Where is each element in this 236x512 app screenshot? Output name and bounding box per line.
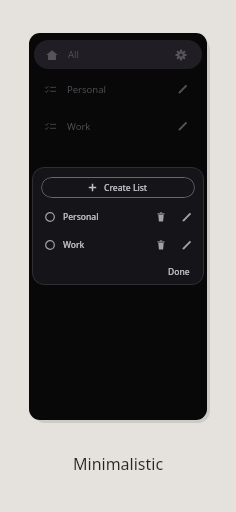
staticText: Personal <box>67 83 106 96</box>
button[interactable]: Edit Personal <box>175 81 191 97</box>
button[interactable]: Edit Work <box>175 118 191 134</box>
staticText: Work <box>67 120 91 133</box>
button[interactable]: Edit Personal <box>179 209 195 225</box>
button[interactable]: Create List <box>41 177 195 198</box>
button[interactable]: Work <box>41 236 195 254</box>
staticText: Create List <box>104 182 148 194</box>
button[interactable]: Settings <box>172 46 190 64</box>
button[interactable]: All <box>34 40 202 69</box>
button[interactable]: Work <box>29 115 207 137</box>
staticText: Done <box>168 266 190 278</box>
button[interactable]: Delete Personal <box>153 209 169 225</box>
staticText: All <box>68 48 79 61</box>
button[interactable]: Delete Work <box>153 237 169 253</box>
staticText: Personal <box>63 211 99 223</box>
button[interactable]: Edit Work <box>179 237 195 253</box>
staticText: Minimalistic <box>73 453 164 475</box>
button[interactable]: Personal <box>29 78 207 100</box>
button[interactable]: Done <box>163 264 195 280</box>
staticText: Work <box>63 239 85 251</box>
button[interactable]: Personal <box>41 208 195 226</box>
